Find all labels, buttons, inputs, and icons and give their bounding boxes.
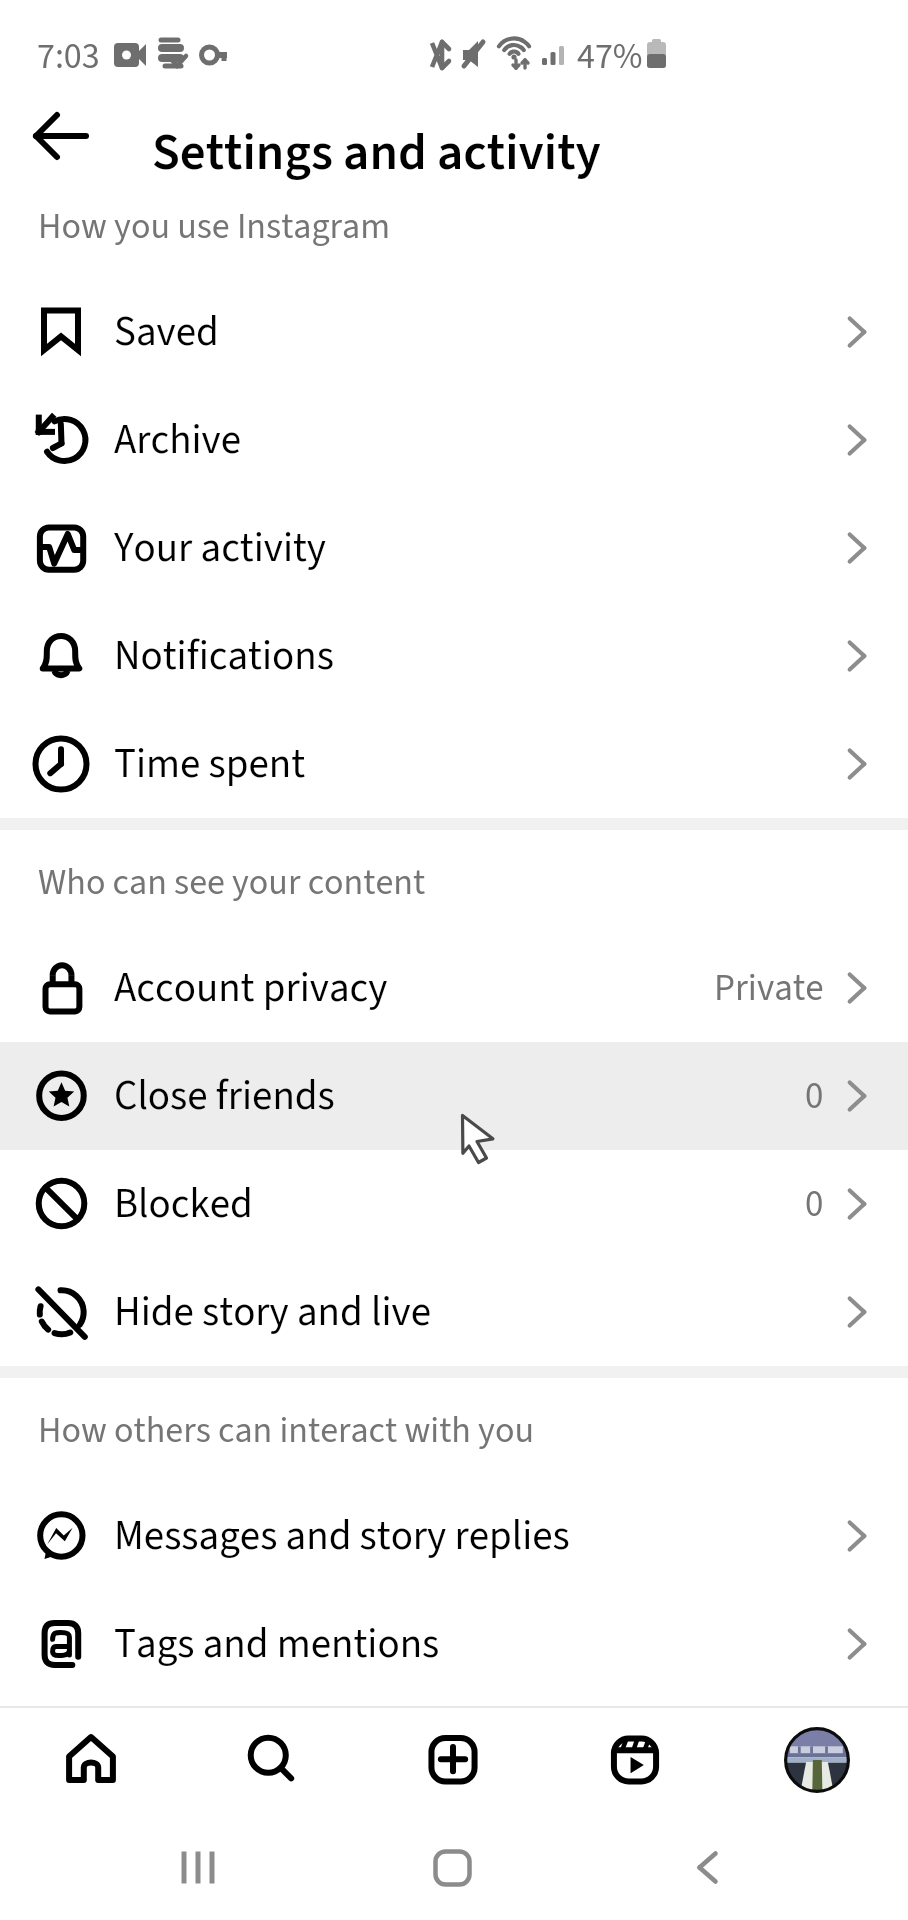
button[interactable]: Home: [0, 1708, 181, 1812]
staticText: Tags and mentions: [114, 1615, 440, 1673]
staticText: 7:03: [37, 31, 100, 82]
button[interactable]: Back: [666, 1826, 748, 1908]
staticText: 47%: [577, 31, 643, 82]
staticText: Account privacy: [114, 959, 388, 1017]
staticText: Archive: [114, 411, 242, 469]
button[interactable]: Tags and mentions: [0, 1590, 908, 1698]
staticText: Hide story and live: [114, 1283, 432, 1341]
staticText: Close friends: [114, 1067, 335, 1125]
button[interactable]: Your activity: [0, 494, 908, 602]
button[interactable]: Back: [18, 92, 104, 166]
staticText: 0: [805, 1178, 824, 1231]
button[interactable]: Account privacy: [0, 934, 908, 1042]
button[interactable]: Profile: [726, 1708, 908, 1812]
button[interactable]: Time spent: [0, 710, 908, 818]
button[interactable]: Reels: [544, 1708, 726, 1812]
button[interactable]: Blocked: [0, 1150, 908, 1258]
staticText: How you use Instagram: [38, 201, 391, 252]
staticText: Who can see your content: [38, 857, 426, 908]
button[interactable]: Messages and story replies: [0, 1482, 908, 1590]
button[interactable]: Saved: [0, 278, 908, 386]
staticText: 0: [805, 1070, 824, 1123]
button[interactable]: Create: [362, 1708, 544, 1812]
staticText: Settings and activity: [152, 117, 601, 190]
button[interactable]: Notifications: [0, 602, 908, 710]
staticText: Messages and story replies: [114, 1507, 570, 1565]
button[interactable]: Hide story and live: [0, 1258, 908, 1366]
staticText: Saved: [114, 303, 219, 361]
button[interactable]: Recent apps: [157, 1826, 239, 1908]
button[interactable]: Home: [411, 1826, 493, 1908]
staticText: Your activity: [114, 519, 327, 577]
staticText: Time spent: [114, 735, 306, 793]
staticText: Private: [714, 962, 824, 1015]
button[interactable]: Archive: [0, 386, 908, 494]
button[interactable]: Close friends: [0, 1042, 908, 1150]
button[interactable]: Search: [181, 1708, 362, 1812]
staticText: Blocked: [114, 1175, 253, 1233]
staticText: Notifications: [114, 627, 334, 685]
staticText: How others can interact with you: [38, 1405, 535, 1456]
